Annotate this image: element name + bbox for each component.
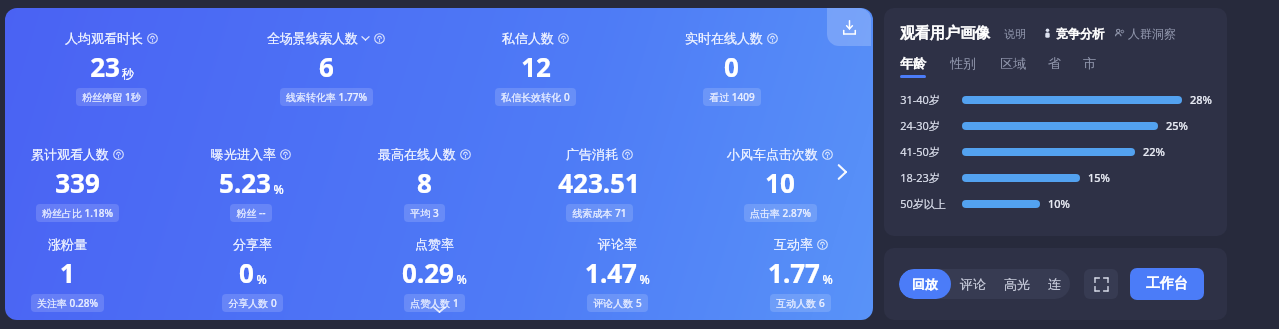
staticText: 曝光进入率 <box>211 146 276 162</box>
button[interactable]: 人群洞察 <box>1114 26 1176 41</box>
staticText: 市 <box>1083 55 1096 71</box>
staticText: 区域 <box>1000 55 1026 71</box>
staticText: 25% <box>1166 118 1188 133</box>
staticText: 省 <box>1048 55 1061 71</box>
staticText: 竞争分析 <box>1056 26 1104 41</box>
staticText: 5.23 <box>219 165 271 200</box>
staticText: 18-23岁 <box>900 170 940 185</box>
button[interactable]: 年龄 <box>900 55 950 78</box>
staticText: 私信人数 <box>502 30 554 46</box>
staticText: 点赞人数 1 <box>410 296 459 310</box>
staticText: 线索成本 71 <box>572 206 627 220</box>
staticText: 累计观看人数 <box>31 146 109 162</box>
staticText: 分享率 <box>233 236 272 252</box>
staticText: % <box>639 271 650 287</box>
button[interactable]: 连 <box>1039 269 1070 299</box>
button[interactable]: 评论率 <box>585 236 650 312</box>
staticText: 连 <box>1048 276 1061 292</box>
staticText: 工作台 <box>1146 275 1188 293</box>
button[interactable]: 私信人数 <box>495 30 576 106</box>
staticText: 涨粉量 <box>48 236 87 252</box>
staticText: 说明 <box>1004 27 1026 41</box>
button[interactable]: 省 <box>1048 55 1083 75</box>
staticText: 50岁以上 <box>900 196 946 211</box>
staticText: 平均 3 <box>410 206 439 220</box>
staticText: 6 <box>319 49 334 84</box>
staticText: 1.77 <box>768 255 820 290</box>
staticText: 28% <box>1190 92 1212 107</box>
staticText: % <box>822 271 833 287</box>
staticText: 1 <box>60 255 75 290</box>
staticText: 互动率 <box>774 236 813 252</box>
button[interactable]: 累计观看人数 <box>31 146 124 222</box>
button[interactable]: 性别 <box>950 55 1000 75</box>
staticText: 0 <box>239 255 254 290</box>
staticText: 31-40岁 <box>900 92 940 107</box>
staticText: 点赞率 <box>415 236 454 252</box>
button[interactable]: 区域 <box>1000 55 1048 75</box>
staticText: 看过 1409 <box>709 90 755 104</box>
staticText: 线索转化率 1.77% <box>286 90 367 104</box>
staticText: 粉丝 -- <box>236 206 266 220</box>
staticText: % <box>273 181 284 197</box>
button[interactable]: 小风车点击次数 <box>727 146 833 222</box>
staticText: 粉丝占比 1.18% <box>42 206 113 220</box>
staticText: 性别 <box>950 55 976 71</box>
staticText: 年龄 <box>900 55 926 71</box>
staticText: 回放 <box>912 276 938 292</box>
staticText: 粉丝停留 1秒 <box>82 90 141 104</box>
button[interactable]: 实时在线人数 <box>685 30 778 106</box>
staticText: 0.29 <box>402 255 454 290</box>
staticText: 24-30岁 <box>900 118 940 133</box>
button[interactable]: Fullscreen <box>1084 269 1118 299</box>
staticText: 12 <box>521 49 551 84</box>
button[interactable]: 全场景线索人数 <box>267 30 385 106</box>
staticText: 423.51 <box>558 165 640 200</box>
staticText: 广告消耗 <box>566 146 618 162</box>
staticText: 0 <box>724 49 739 84</box>
button[interactable]: 人均观看时长 <box>65 30 158 106</box>
staticText: 41-50岁 <box>900 144 940 159</box>
staticText: 15% <box>1088 170 1110 185</box>
staticText: 观看用户画像 <box>900 24 990 43</box>
staticText: % <box>256 271 267 287</box>
staticText: 点击率 2.87% <box>750 206 811 220</box>
button[interactable]: 广告消耗 <box>558 146 640 222</box>
button[interactable]: 市 <box>1083 55 1118 75</box>
button[interactable]: 说明 <box>1004 27 1026 41</box>
staticText: 人均观看时长 <box>65 30 143 46</box>
button[interactable]: 点赞率 <box>402 236 467 312</box>
staticText: 评论 <box>960 276 986 292</box>
button[interactable]: Expand <box>424 301 454 317</box>
button[interactable]: 涨粉量 <box>31 236 104 312</box>
staticText: 8 <box>417 165 432 200</box>
button[interactable]: 竞争分析 <box>1042 26 1104 41</box>
staticText: 10% <box>1048 196 1070 211</box>
button[interactable]: Download <box>827 8 871 46</box>
staticText: 1.47 <box>585 255 637 290</box>
staticText: 高光 <box>1004 276 1030 292</box>
staticText: 339 <box>55 165 100 200</box>
staticText: 评论人数 5 <box>593 296 642 310</box>
staticText: 小风车点击次数 <box>727 146 818 162</box>
button[interactable]: 曝光进入率 <box>211 146 291 222</box>
staticText: 秒 <box>122 66 134 81</box>
staticText: 私信长效转化 0 <box>501 90 570 104</box>
staticText: 实时在线人数 <box>685 30 763 46</box>
staticText: % <box>456 271 467 287</box>
staticText: 评论率 <box>598 236 637 252</box>
staticText: 最高在线人数 <box>378 146 456 162</box>
button[interactable]: 回放 <box>899 269 951 299</box>
staticText: 关注率 0.28% <box>37 296 98 310</box>
button[interactable]: 评论 <box>951 269 995 299</box>
button[interactable]: 互动率 <box>768 236 833 312</box>
button[interactable]: 分享率 <box>222 236 283 312</box>
button[interactable]: Next <box>829 159 855 185</box>
staticText: 10 <box>765 165 795 200</box>
button[interactable]: 最高在线人数 <box>378 146 471 222</box>
staticText: 全场景线索人数 <box>267 30 358 46</box>
staticText: 互动人数 6 <box>776 296 825 310</box>
button[interactable]: 工作台 <box>1130 268 1204 300</box>
button[interactable]: 高光 <box>995 269 1039 299</box>
staticText: 22% <box>1143 144 1165 159</box>
